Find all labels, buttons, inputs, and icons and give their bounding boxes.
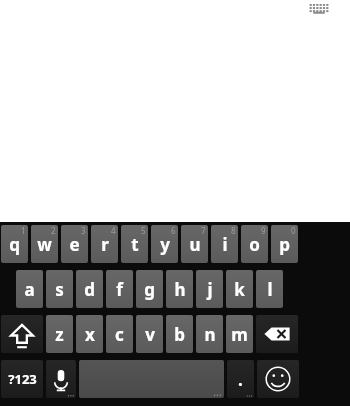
staticText: c <box>115 323 124 346</box>
button[interactable]: Backspace <box>256 315 298 353</box>
staticText: m <box>231 323 248 346</box>
button[interactable]: j <box>196 270 223 308</box>
button[interactable]: z <box>46 315 73 353</box>
staticText: g <box>144 278 155 301</box>
button[interactable]: h <box>166 270 193 308</box>
button[interactable]: ?123 <box>1 360 43 398</box>
button[interactable]: q <box>1 225 28 263</box>
button[interactable]: Shift <box>1 315 43 353</box>
button[interactable]: x <box>76 315 103 353</box>
other: Keyboard input method <box>309 2 329 16</box>
staticText: 7 <box>201 225 206 236</box>
staticText: 8 <box>231 225 236 236</box>
staticText: v <box>145 323 155 346</box>
staticText: b <box>174 323 185 346</box>
staticText: 5 <box>141 225 146 236</box>
staticText: o <box>249 233 260 256</box>
button[interactable]: u <box>181 225 208 263</box>
button[interactable]: s <box>46 270 73 308</box>
staticText: y <box>160 233 170 256</box>
button[interactable]: k <box>226 270 253 308</box>
button[interactable]: Emoji <box>257 360 299 398</box>
button[interactable]: Voice input <box>46 360 76 398</box>
staticText: d <box>84 278 95 301</box>
staticText: n <box>204 323 216 346</box>
button[interactable]: m <box>226 315 253 353</box>
staticText: ?123 <box>8 370 37 388</box>
staticText: k <box>234 278 245 301</box>
button[interactable]: g <box>136 270 163 308</box>
staticText: e <box>69 233 80 256</box>
staticText: w <box>37 233 52 256</box>
staticText: 1 <box>21 225 26 236</box>
staticText: q <box>9 233 20 256</box>
staticText: s <box>55 278 64 301</box>
staticText: t <box>131 233 139 256</box>
button[interactable]: i <box>211 225 238 263</box>
staticText: j <box>207 278 213 301</box>
staticText: 2 <box>51 225 56 236</box>
staticText: 0 <box>291 225 296 236</box>
staticText: p <box>279 233 290 256</box>
staticText: i <box>222 233 228 256</box>
button[interactable]: p <box>271 225 298 263</box>
button[interactable]: d <box>76 270 103 308</box>
staticText: h <box>174 278 186 301</box>
staticText: 6 <box>171 225 176 236</box>
button[interactable]: b <box>166 315 193 353</box>
button[interactable]: n <box>196 315 223 353</box>
button[interactable]: a <box>16 270 43 308</box>
staticText: r <box>101 233 109 256</box>
staticText: f <box>116 278 123 301</box>
staticText: 4 <box>111 225 116 236</box>
staticText: l <box>267 278 273 301</box>
button[interactable]: f <box>106 270 133 308</box>
staticText: 9 <box>261 225 266 236</box>
staticText: . <box>238 368 243 391</box>
staticText: a <box>24 278 35 301</box>
staticText: z <box>55 323 64 346</box>
button[interactable]: t <box>121 225 148 263</box>
button[interactable]: . <box>227 360 254 398</box>
button[interactable]: c <box>106 315 133 353</box>
button[interactable]: o <box>241 225 268 263</box>
button[interactable]: l <box>256 270 283 308</box>
button[interactable]: r <box>91 225 118 263</box>
button[interactable]: v <box>136 315 163 353</box>
button[interactable]: Space <box>79 360 224 398</box>
button[interactable]: y <box>151 225 178 263</box>
staticText: x <box>85 323 95 346</box>
staticText: u <box>189 233 201 256</box>
staticText: 3 <box>81 225 86 236</box>
button[interactable]: w <box>31 225 58 263</box>
button[interactable]: e <box>61 225 88 263</box>
